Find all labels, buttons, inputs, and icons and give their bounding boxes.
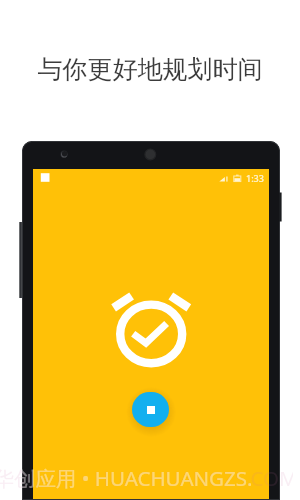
button[interactable]: Stop timer	[132, 392, 169, 427]
staticText: 华创应用 • HUACHUANGZS.COM	[22, 464, 252, 492]
staticText: 与你更好地规划时间	[0, 54, 300, 85]
staticText: 1:33	[246, 172, 264, 184]
staticText: 华创应用 • HUACHUANGZS.COM	[0, 464, 293, 492]
